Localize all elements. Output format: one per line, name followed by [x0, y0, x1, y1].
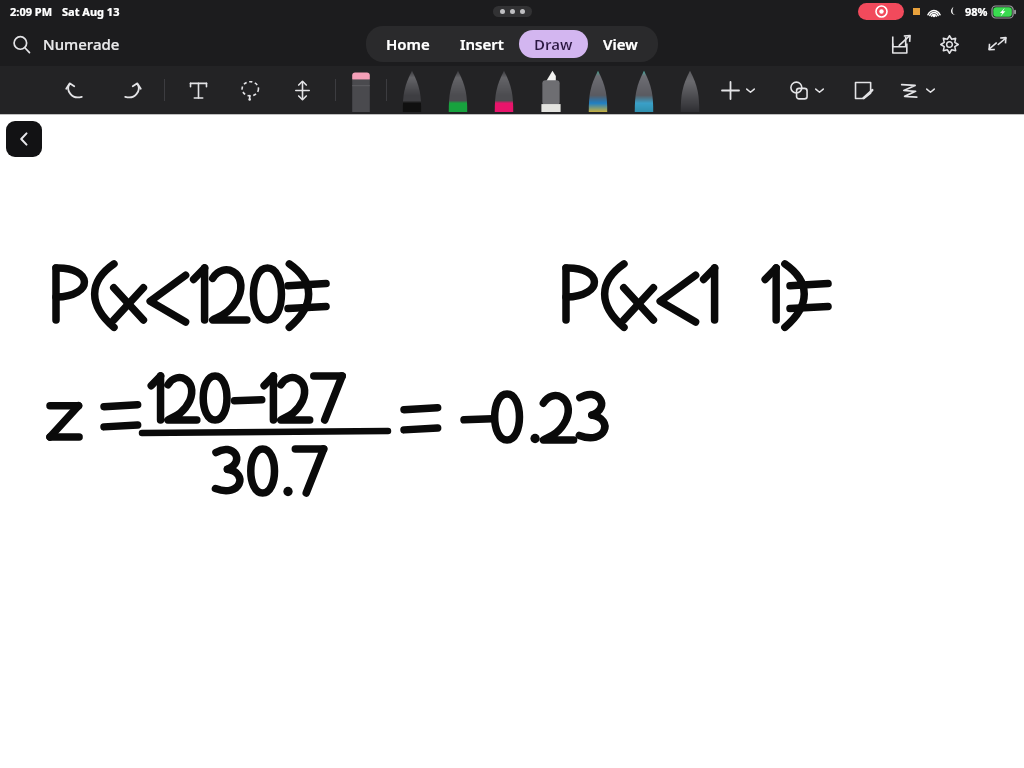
button[interactable]: Home: [371, 30, 445, 58]
button[interactable]: Lasso select: [235, 75, 265, 105]
staticText: Insert: [460, 34, 504, 54]
button[interactable]: Insert: [445, 30, 519, 58]
button[interactable]: Shapes: [789, 75, 824, 105]
button[interactable]: Highlighter: [539, 68, 563, 112]
staticText: Sat Aug 13: [62, 4, 120, 19]
button[interactable]: Insert space: [287, 75, 317, 105]
other: Search: [12, 35, 31, 54]
button[interactable]: Text: [183, 75, 213, 105]
staticText: 98%: [965, 4, 988, 19]
button[interactable]: View: [588, 30, 653, 58]
staticText: Draw: [534, 34, 573, 54]
button[interactable]: Note: [848, 75, 878, 105]
button[interactable]: Back: [6, 121, 42, 157]
other: Recording: [858, 3, 904, 20]
button[interactable]: Pen: [493, 68, 515, 112]
button[interactable]: Add pen: [721, 75, 755, 105]
button[interactable]: Redo: [116, 75, 146, 105]
staticText: Numerade: [43, 34, 120, 54]
button[interactable]: Collapse: [984, 31, 1010, 57]
button[interactable]: Undo: [60, 75, 90, 105]
staticText: 2:09 PM: [10, 4, 53, 19]
button[interactable]: Draw: [519, 30, 588, 58]
button[interactable]: Search: [12, 34, 120, 54]
button[interactable]: Ink to shape: [900, 75, 935, 105]
button[interactable]: Pen: [587, 68, 609, 112]
button[interactable]: Pen: [401, 68, 423, 112]
button[interactable]: Share: [888, 31, 914, 57]
staticText: Home: [386, 34, 430, 54]
staticText: View: [603, 34, 638, 54]
button[interactable]: Pen: [633, 68, 655, 112]
button[interactable]: Pen: [447, 68, 469, 112]
button[interactable]: Pencil: [679, 68, 701, 112]
button[interactable]: Settings: [936, 31, 962, 57]
button[interactable]: Eraser: [350, 68, 372, 112]
